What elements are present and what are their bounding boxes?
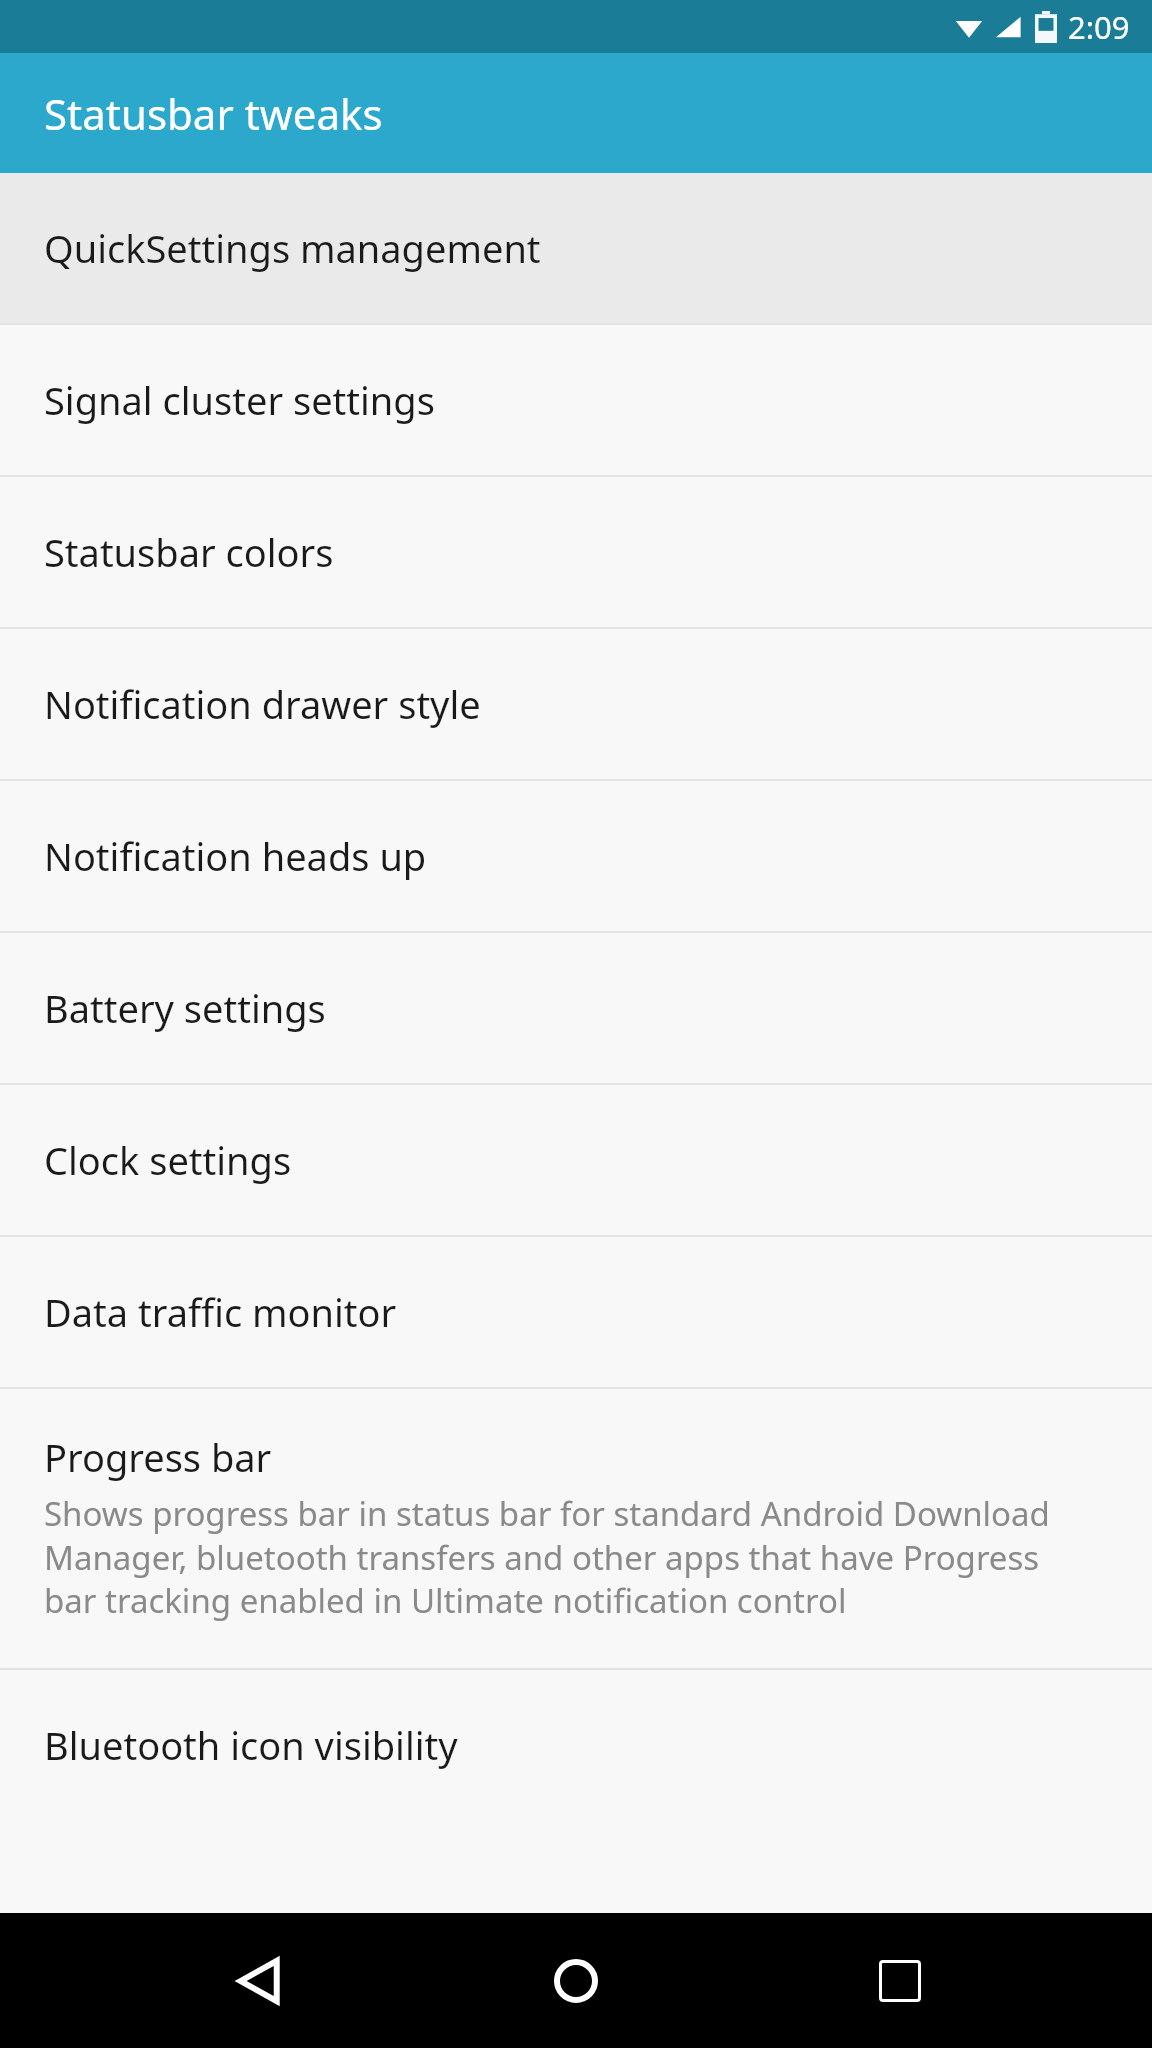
button[interactable]: Signal cluster settings xyxy=(0,325,1152,475)
staticText: Statusbar tweaks xyxy=(44,85,383,142)
staticText: Shows progress bar in status bar for sta… xyxy=(44,1491,1094,1622)
button[interactable]: Home xyxy=(528,1933,624,2029)
staticText: Signal cluster settings xyxy=(44,374,435,426)
staticText: Progress bar xyxy=(44,1431,272,1483)
button[interactable]: Statusbar colors xyxy=(0,477,1152,627)
button[interactable]: Notification drawer style xyxy=(0,629,1152,779)
button[interactable]: Notification heads up xyxy=(0,781,1152,931)
button[interactable]: Bluetooth icon visibility xyxy=(0,1670,1152,1820)
staticText: Bluetooth icon visibility xyxy=(44,1719,458,1771)
staticText: QuickSettings management xyxy=(44,222,541,274)
button[interactable]: Clock settings xyxy=(0,1085,1152,1235)
staticText: Battery settings xyxy=(44,982,326,1034)
staticText: Data traffic monitor xyxy=(44,1286,397,1338)
button[interactable]: Recent apps xyxy=(852,1933,948,2029)
staticText: Notification drawer style xyxy=(44,678,481,730)
button[interactable]: Back xyxy=(212,1933,308,2029)
staticText: Notification heads up xyxy=(44,830,427,882)
staticText: 2:09 xyxy=(1068,6,1130,48)
button[interactable]: QuickSettings management xyxy=(0,173,1152,323)
staticText: Clock settings xyxy=(44,1134,292,1186)
button[interactable]: Battery settings xyxy=(0,933,1152,1083)
staticText: 77 xyxy=(1040,16,1053,31)
button[interactable]: Data traffic monitor xyxy=(0,1237,1152,1387)
button[interactable]: Progress bar xyxy=(0,1389,1152,1668)
staticText: Statusbar colors xyxy=(44,526,334,578)
